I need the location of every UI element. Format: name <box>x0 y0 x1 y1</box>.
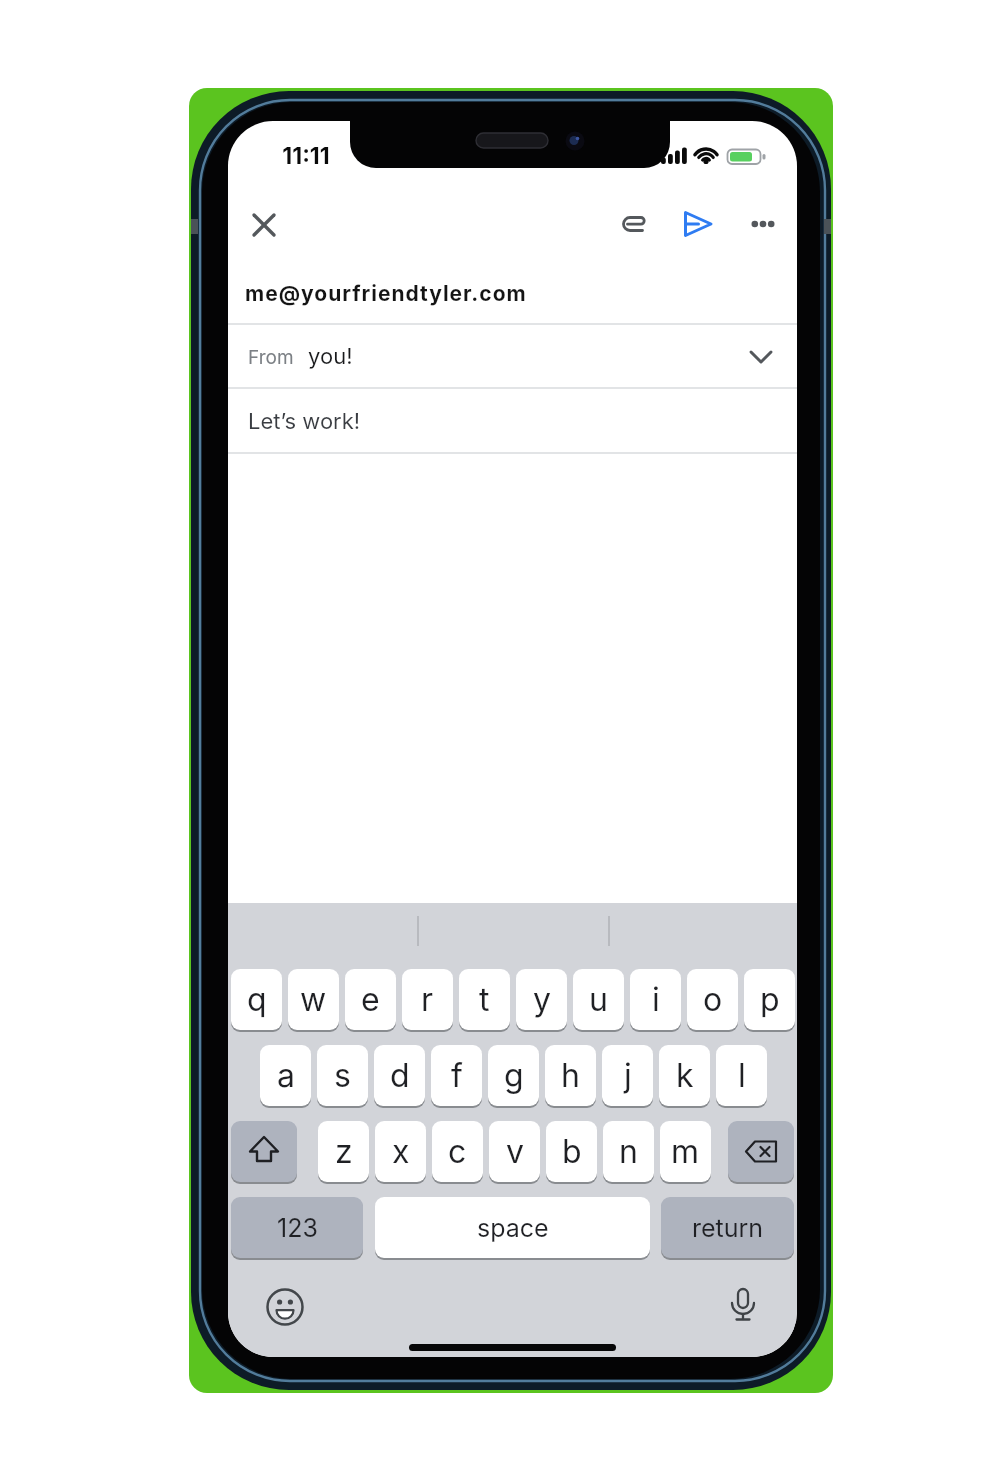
button[interactable] <box>746 207 780 241</box>
staticText: i <box>652 980 660 1019</box>
staticText: space <box>477 1213 549 1243</box>
staticText: z <box>335 1132 353 1171</box>
button[interactable]: a <box>260 1045 311 1106</box>
button[interactable] <box>723 1285 763 1325</box>
staticText: w <box>300 980 327 1019</box>
staticText: 11:11 <box>282 142 330 170</box>
button[interactable]: j <box>602 1045 653 1106</box>
staticText: a <box>277 1056 295 1095</box>
button[interactable]: w <box>288 969 339 1030</box>
staticText: j <box>624 1056 632 1095</box>
staticText: g <box>504 1056 524 1095</box>
button[interactable]: g <box>488 1045 539 1106</box>
button[interactable]: q <box>231 969 282 1030</box>
staticText: n <box>619 1132 638 1171</box>
staticText: me@yourfriendtyler.com <box>245 281 527 306</box>
button[interactable] <box>615 206 651 242</box>
button[interactable]: z <box>318 1121 369 1182</box>
button[interactable] <box>745 341 777 373</box>
button[interactable]: l <box>716 1045 767 1106</box>
button[interactable]: space <box>375 1197 650 1258</box>
staticText: o <box>703 980 723 1019</box>
button[interactable] <box>228 262 797 323</box>
button[interactable] <box>228 389 797 452</box>
staticText: x <box>392 1132 410 1171</box>
staticText: s <box>334 1056 351 1095</box>
button[interactable] <box>680 206 716 242</box>
button[interactable]: v <box>489 1121 540 1182</box>
button[interactable]: b <box>546 1121 597 1182</box>
staticText: t <box>479 980 490 1019</box>
button[interactable]: o <box>687 969 738 1030</box>
staticText: c <box>448 1132 467 1171</box>
button[interactable] <box>231 1121 297 1182</box>
staticText: k <box>676 1056 694 1095</box>
staticText: b <box>562 1132 582 1171</box>
staticText: q <box>247 980 267 1019</box>
staticText: From <box>248 346 294 369</box>
button[interactable]: x <box>375 1121 426 1182</box>
staticText: l <box>738 1056 746 1095</box>
staticText: e <box>361 980 380 1019</box>
staticText: u <box>589 980 608 1019</box>
button[interactable]: i <box>630 969 681 1030</box>
button[interactable]: 123 <box>231 1197 363 1258</box>
button[interactable] <box>728 1121 794 1182</box>
button[interactable]: p <box>744 969 795 1030</box>
staticText: Let’s work! <box>248 408 361 435</box>
staticText: h <box>561 1056 580 1095</box>
button[interactable] <box>246 207 282 243</box>
staticText: v <box>506 1132 524 1171</box>
staticText: p <box>760 980 780 1019</box>
staticText: y <box>533 980 551 1019</box>
button[interactable]: n <box>603 1121 654 1182</box>
staticText: f <box>451 1056 463 1095</box>
staticText: d <box>390 1056 410 1095</box>
button[interactable]: r <box>402 969 453 1030</box>
button[interactable]: t <box>459 969 510 1030</box>
button[interactable]: s <box>317 1045 368 1106</box>
button[interactable]: d <box>374 1045 425 1106</box>
button[interactable]: m <box>660 1121 711 1182</box>
staticText: m <box>671 1132 700 1171</box>
staticText: r <box>421 980 434 1019</box>
button[interactable]: u <box>573 969 624 1030</box>
button[interactable]: h <box>545 1045 596 1106</box>
button[interactable] <box>265 1287 305 1327</box>
button[interactable]: e <box>345 969 396 1030</box>
button[interactable]: return <box>661 1197 794 1258</box>
button[interactable] <box>228 325 797 387</box>
button[interactable]: k <box>659 1045 710 1106</box>
staticText: 123 <box>277 1213 318 1243</box>
button[interactable]: y <box>516 969 567 1030</box>
staticText: you! <box>308 343 353 370</box>
staticText: return <box>692 1213 764 1243</box>
button[interactable]: f <box>431 1045 482 1106</box>
button[interactable]: c <box>432 1121 483 1182</box>
